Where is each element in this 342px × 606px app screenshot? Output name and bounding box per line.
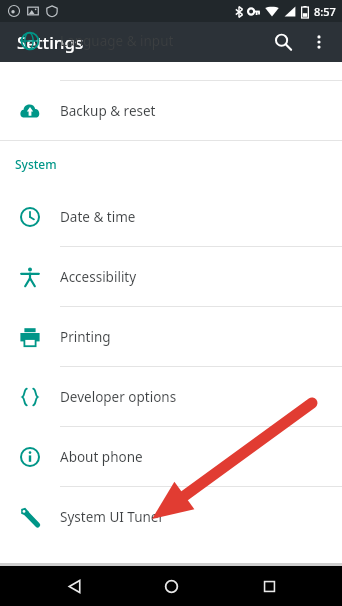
button[interactable]: About phone bbox=[0, 427, 342, 486]
button[interactable]: Accessibility bbox=[0, 247, 342, 306]
button[interactable]: Home bbox=[147, 566, 195, 606]
staticText: Date & time bbox=[60, 208, 136, 226]
staticText: System bbox=[15, 156, 57, 172]
button[interactable]: System UI Tuner bbox=[0, 487, 342, 546]
button[interactable]: Date & time bbox=[0, 187, 342, 246]
button[interactable]: More options bbox=[302, 25, 336, 59]
button[interactable]: Developer options bbox=[0, 367, 342, 426]
button[interactable]: Back bbox=[50, 566, 98, 606]
staticText: About phone bbox=[60, 448, 143, 466]
staticText: Language & input bbox=[60, 32, 174, 50]
staticText: Accessibility bbox=[60, 268, 137, 286]
button[interactable]: Recents bbox=[245, 566, 293, 606]
staticText: Backup & reset bbox=[60, 102, 156, 120]
staticText: System UI Tuner bbox=[60, 508, 165, 526]
staticText: Settings bbox=[17, 31, 84, 54]
staticText: 8:57 bbox=[314, 4, 336, 19]
button[interactable]: Backup & reset bbox=[0, 81, 342, 140]
button[interactable]: Printing bbox=[0, 307, 342, 366]
staticText: Developer options bbox=[60, 388, 177, 406]
staticText: Printing bbox=[60, 328, 111, 346]
button[interactable]: Search bbox=[264, 23, 302, 61]
